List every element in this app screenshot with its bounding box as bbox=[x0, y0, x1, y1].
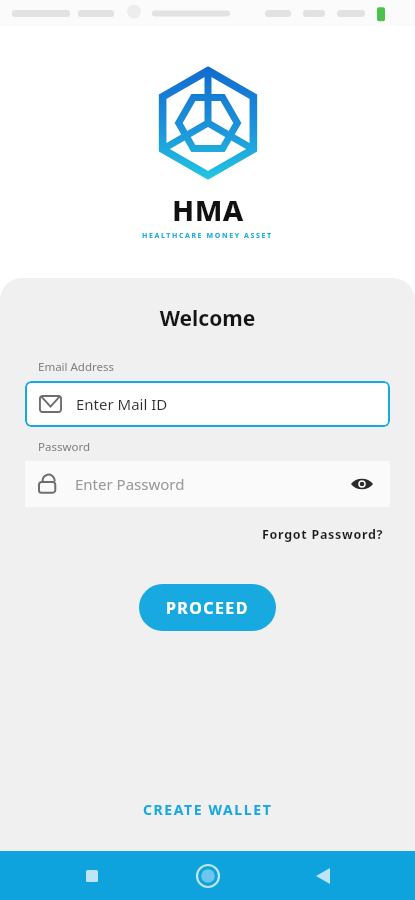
button[interactable]: Recent apps bbox=[68, 852, 116, 900]
staticText: CREATE WALLET bbox=[143, 800, 273, 819]
button[interactable]: Enter Password bbox=[25, 461, 390, 507]
staticText: Enter Password bbox=[75, 474, 348, 494]
button[interactable]: PROCEED bbox=[139, 584, 276, 631]
button[interactable]: Back bbox=[299, 852, 347, 900]
staticText: Password bbox=[38, 439, 91, 455]
staticText: Email Address bbox=[38, 359, 115, 375]
staticText: Welcome bbox=[0, 304, 415, 333]
staticText: Forgot Password? bbox=[262, 526, 384, 543]
button[interactable]: Home bbox=[184, 852, 232, 900]
button[interactable]: Forgot Password? bbox=[259, 523, 387, 546]
staticText: HMA bbox=[172, 190, 244, 229]
staticText: Enter Mail ID bbox=[76, 394, 168, 414]
button[interactable]: Enter Mail ID bbox=[25, 381, 390, 427]
button[interactable]: CREATE WALLET bbox=[133, 794, 283, 825]
staticText: HEALTHCARE MONEY ASSET bbox=[142, 231, 273, 241]
staticText: PROCEED bbox=[166, 597, 249, 619]
button[interactable]: Show password bbox=[348, 470, 376, 498]
